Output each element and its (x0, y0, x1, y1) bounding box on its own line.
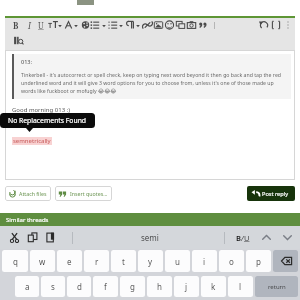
button[interactable]: Attach files (5, 186, 51, 201)
staticText: f (104, 281, 107, 292)
button[interactable]: Insert quotes... (55, 186, 112, 201)
button[interactable]: I (24, 18, 34, 32)
button[interactable]: i (192, 250, 217, 272)
button[interactable]: return (255, 276, 298, 297)
button[interactable]: Highlight colour (80, 18, 91, 32)
button[interactable]: a (15, 276, 39, 297)
staticText: j (185, 281, 188, 292)
staticText: 013: (21, 58, 32, 65)
staticText: u (175, 256, 180, 267)
button[interactable]: Bulleted list menu (101, 18, 107, 32)
button[interactable]: f (93, 276, 118, 297)
staticText: U (38, 20, 44, 31)
staticText: I (28, 20, 31, 31)
button[interactable]: Font size (47, 18, 60, 32)
button[interactable]: Next suggestion (280, 226, 294, 249)
button[interactable]: Cut (6, 226, 22, 249)
staticText: t (122, 256, 125, 267)
staticText: q (13, 256, 18, 267)
button[interactable]: More options (284, 18, 292, 32)
staticText: No Replacements Found (8, 116, 87, 125)
staticText: B (236, 233, 241, 243)
staticText: U (244, 233, 250, 243)
button[interactable]: q (2, 250, 28, 272)
staticText: return (268, 283, 286, 291)
staticText: Good morning 013 :) (12, 106, 71, 114)
button[interactable]: Backspace (273, 250, 298, 272)
staticText: Similar threads (6, 216, 49, 224)
staticText: semi (141, 232, 159, 243)
staticText: p (256, 256, 261, 267)
button[interactable]: u (165, 250, 190, 272)
button[interactable]: Paste (42, 226, 58, 249)
staticText: semnetrically (13, 137, 51, 145)
button[interactable]: Copy (24, 226, 40, 249)
button[interactable]: r (84, 250, 109, 272)
button[interactable]: k (201, 276, 226, 297)
button[interactable]: d (67, 276, 91, 297)
button[interactable]: No Replacements Found (8, 116, 87, 125)
button[interactable]: Paragraph (124, 18, 136, 32)
staticText: k (211, 281, 216, 292)
button[interactable]: Insert media (175, 18, 186, 32)
staticText: e (67, 256, 72, 267)
button[interactable]: Undo (258, 18, 270, 32)
button[interactable]: l (228, 276, 253, 297)
staticText: r (95, 256, 99, 267)
staticText: s (51, 281, 55, 292)
button[interactable]: Previous suggestion (259, 226, 273, 249)
staticText: Insert quotes... (70, 190, 108, 197)
button[interactable]: U (36, 18, 46, 32)
button[interactable]: Insert image (153, 18, 164, 32)
button[interactable]: j (174, 276, 199, 297)
button[interactable]: Text colour (63, 18, 74, 32)
staticText: B (13, 20, 19, 31)
button[interactable]: B (11, 18, 21, 32)
staticText: w (39, 256, 46, 267)
button[interactable]: Insert quote (197, 18, 209, 32)
button[interactable]: y (138, 250, 163, 272)
staticText: g (130, 281, 135, 292)
button[interactable]: Code (270, 18, 282, 32)
staticText: Tinkerbell - it's autocorrect or spell c… (21, 71, 288, 94)
button[interactable]: Numbered list (107, 18, 119, 32)
button[interactable]: p (246, 250, 271, 272)
button[interactable]: Text colour menu (73, 18, 79, 32)
button[interactable]: Spell check (12, 32, 25, 50)
button[interactable]: t (111, 250, 136, 272)
staticText: l (239, 281, 242, 292)
staticText: Post reply (262, 190, 289, 198)
staticText: y (148, 256, 153, 267)
staticText: a (25, 281, 30, 292)
button[interactable]: B (236, 226, 250, 249)
button[interactable]: w (30, 250, 55, 272)
button[interactable]: g (120, 276, 145, 297)
staticText: i (203, 256, 206, 267)
button[interactable]: Paragraph menu (135, 18, 141, 32)
button[interactable]: Post reply (247, 186, 295, 201)
button[interactable]: Numbered list menu (118, 18, 124, 32)
button[interactable]: Insert emoji (164, 18, 175, 32)
button[interactable]: e (57, 250, 82, 272)
button[interactable]: h (147, 276, 172, 297)
button[interactable]: Font size menu (57, 18, 63, 32)
staticText: h (157, 281, 162, 292)
staticText: Attach files (19, 190, 47, 197)
staticText: / (241, 233, 244, 243)
button[interactable]: Bulleted list (89, 18, 101, 32)
button[interactable]: Camera (186, 18, 197, 32)
staticText: d (77, 281, 82, 292)
button[interactable]: Insert link (142, 18, 153, 32)
button[interactable]: o (219, 250, 244, 272)
staticText: o (229, 256, 234, 267)
button[interactable]: s (41, 276, 65, 297)
